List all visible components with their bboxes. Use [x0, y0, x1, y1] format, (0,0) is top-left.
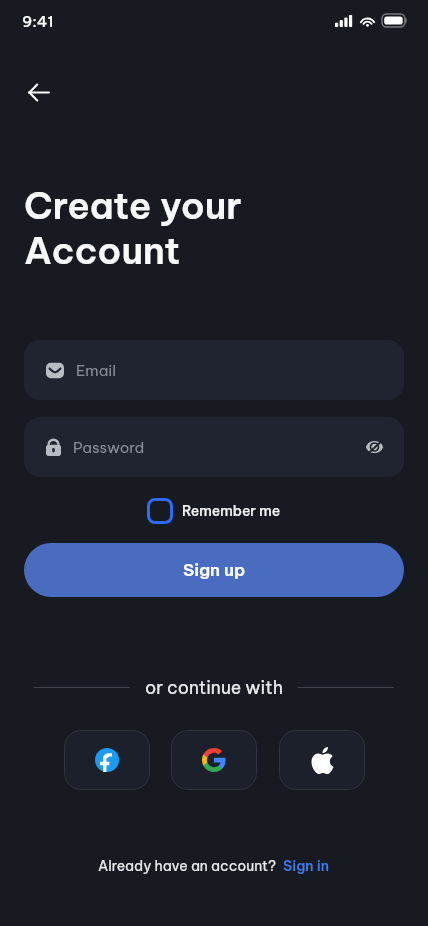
- staticText: Sign in: [283, 857, 330, 875]
- staticText: Email: [76, 361, 117, 380]
- button[interactable]: Email: [24, 340, 404, 400]
- button[interactable]: Sign up: [24, 543, 404, 597]
- button[interactable]: Sign in: [283, 857, 330, 875]
- staticText: 9:41: [22, 12, 54, 31]
- button[interactable]: Back: [14, 68, 62, 116]
- staticText: or continue with: [145, 676, 283, 698]
- button[interactable]: Show password: [366, 439, 383, 455]
- staticText: Remember me: [182, 502, 281, 520]
- button[interactable]: Password: [24, 417, 404, 477]
- button[interactable]: Sign up with Google: [171, 730, 257, 790]
- staticText: Password: [73, 438, 145, 457]
- staticText: Sign up: [183, 559, 246, 581]
- button[interactable]: Sign up with Facebook: [64, 730, 150, 790]
- staticText: Already have an account?: [98, 857, 276, 875]
- staticText: Create your Account: [24, 182, 242, 273]
- button[interactable]: Sign up with Apple: [279, 730, 365, 790]
- button[interactable]: Remember me: [145, 496, 283, 526]
